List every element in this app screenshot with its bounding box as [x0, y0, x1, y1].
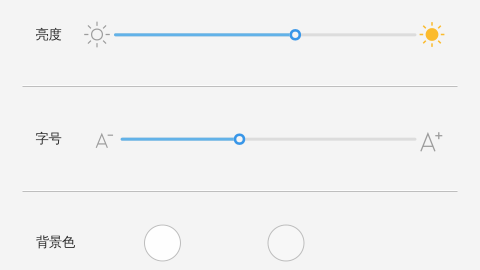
staticText: 字号 [35, 130, 61, 147]
button[interactable]: White background [144, 224, 181, 261]
button[interactable]: Increase brightness [417, 19, 447, 49]
button[interactable]: Light grey background [267, 224, 304, 261]
button[interactable]: Brightness [114, 21, 416, 49]
button[interactable]: Larger text [414, 126, 446, 156]
staticText: 背景色 [36, 234, 75, 250]
button[interactable]: Smaller text [91, 126, 117, 152]
button[interactable]: Font size [121, 125, 416, 153]
button[interactable]: Decrease brightness [82, 19, 112, 49]
staticText: 亮度 [35, 26, 61, 43]
